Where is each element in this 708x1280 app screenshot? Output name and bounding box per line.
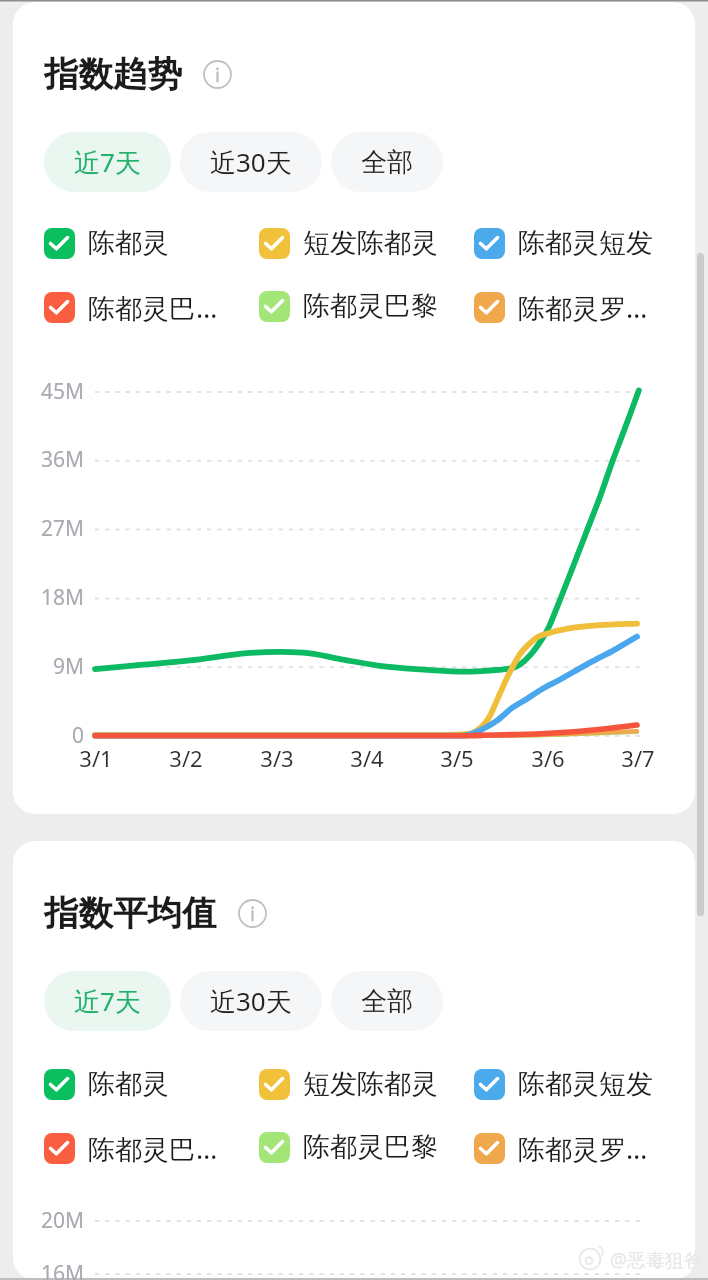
button[interactable]: Info <box>238 899 267 928</box>
staticText: 3/7 <box>608 743 668 773</box>
staticText: 3/4 <box>337 743 397 773</box>
staticText: 27M <box>33 514 84 543</box>
staticText: 近30天 <box>210 144 292 180</box>
staticText: 陈都灵罗… <box>518 289 648 326</box>
button[interactable]: 短发陈都灵 <box>259 1067 474 1101</box>
staticText: 0 <box>33 721 84 750</box>
staticText: 近7天 <box>74 144 141 180</box>
button[interactable]: 陈都灵巴黎 <box>259 289 474 323</box>
staticText: 18M <box>33 583 84 612</box>
staticText: 指数趋势 <box>44 53 182 96</box>
button[interactable]: 全部 <box>331 971 443 1031</box>
staticText: 3/2 <box>156 743 216 773</box>
staticText: 36M <box>33 445 84 474</box>
staticText: 陈都灵短发 <box>518 1067 653 1101</box>
staticText: 短发陈都灵 <box>303 226 438 260</box>
button[interactable]: 近30天 <box>180 971 322 1031</box>
staticText: 指数平均值 <box>44 892 217 935</box>
staticText: 3/3 <box>247 743 307 773</box>
staticText: 近30天 <box>210 983 292 1019</box>
button[interactable]: 短发陈都灵 <box>259 226 474 260</box>
staticText: 陈都灵巴黎 <box>303 1130 438 1164</box>
button[interactable]: 全部 <box>331 132 443 192</box>
button[interactable]: 近7天 <box>44 971 171 1031</box>
button[interactable]: Info <box>203 60 232 89</box>
staticText: 全部 <box>361 985 413 1018</box>
staticText: 陈都灵巴… <box>88 1130 218 1167</box>
staticText: 3/6 <box>518 743 578 773</box>
staticText: 全部 <box>361 146 413 179</box>
staticText: 陈都灵巴… <box>88 289 218 326</box>
button[interactable]: 近7天 <box>44 132 171 192</box>
staticText: 陈都灵 <box>88 226 169 260</box>
button[interactable]: 陈都灵短发 <box>474 226 689 260</box>
staticText: 3/1 <box>66 743 126 773</box>
staticText: 16M <box>33 1259 84 1280</box>
staticText: 陈都灵巴黎 <box>303 289 438 323</box>
staticText: 陈都灵 <box>88 1067 169 1101</box>
button[interactable]: 陈都灵短发 <box>474 1067 689 1101</box>
button[interactable]: 陈都灵 <box>44 1067 259 1101</box>
staticText: 45M <box>33 377 84 406</box>
button[interactable]: 陈都灵巴… <box>44 289 259 326</box>
button[interactable]: 近30天 <box>180 132 322 192</box>
staticText: 近7天 <box>74 983 141 1019</box>
staticText: 陈都灵短发 <box>518 226 653 260</box>
staticText: 短发陈都灵 <box>303 1067 438 1101</box>
staticText: @恶毒狙爸 <box>610 1247 704 1273</box>
button[interactable]: 陈都灵巴… <box>44 1130 259 1167</box>
staticText: 9M <box>33 652 84 681</box>
button[interactable]: 陈都灵罗… <box>474 289 689 326</box>
staticText: 陈都灵罗… <box>518 1130 648 1167</box>
button[interactable]: 陈都灵巴黎 <box>259 1130 474 1164</box>
staticText: 20M <box>33 1206 84 1235</box>
staticText: 3/5 <box>427 743 487 773</box>
button[interactable]: 陈都灵 <box>44 226 259 260</box>
button[interactable]: 陈都灵罗… <box>474 1130 689 1167</box>
